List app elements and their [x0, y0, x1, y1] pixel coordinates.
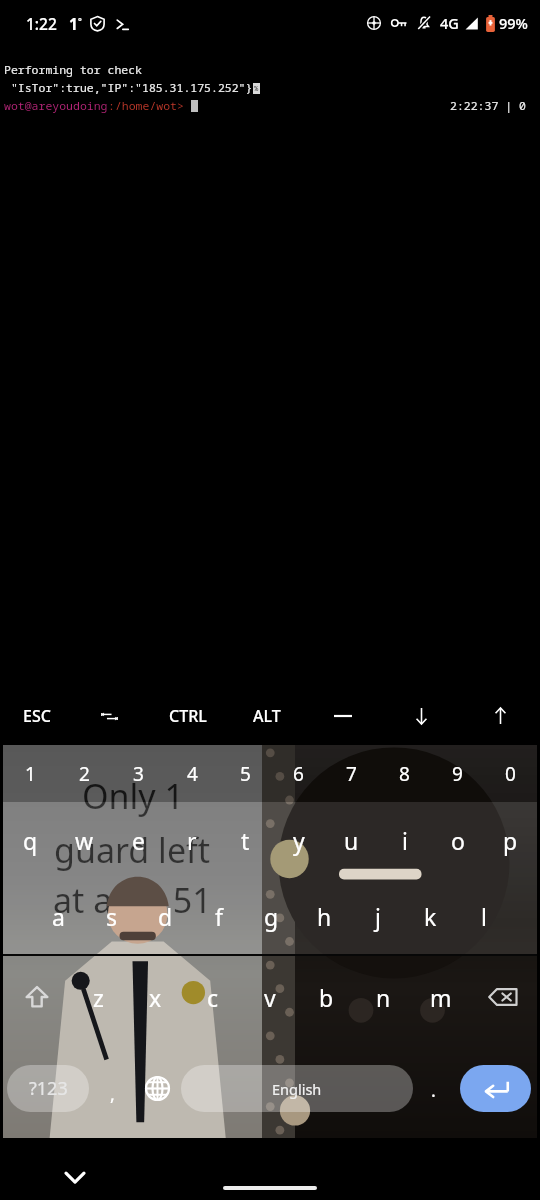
staticText: x — [149, 982, 162, 1013]
staticText: y — [293, 825, 305, 856]
staticText: wot@areyoudoing — [4, 98, 108, 114]
button[interactable]: ESC — [0, 687, 74, 745]
staticText: u — [344, 825, 359, 856]
button[interactable]: ALT — [231, 687, 303, 745]
staticText: a — [52, 901, 65, 932]
staticText: s — [106, 901, 118, 932]
staticText: 0 — [505, 761, 516, 787]
button[interactable]: Minus — [303, 687, 382, 745]
staticText: "IsTor":true,"IP":"185.31.175.252"} — [4, 80, 253, 96]
button[interactable]: Tab — [74, 687, 145, 745]
button[interactable]: 1 — [3, 745, 57, 802]
button[interactable]: w — [57, 802, 111, 878]
staticText: 99% — [499, 13, 528, 33]
button[interactable]: m — [412, 956, 469, 1038]
button[interactable]: q — [3, 802, 57, 878]
button[interactable]: Backspace — [469, 956, 537, 1038]
button[interactable]: ?123 — [3, 1038, 92, 1138]
button[interactable]: e — [111, 802, 165, 878]
staticText: i — [402, 825, 408, 856]
button[interactable]: k — [404, 878, 457, 954]
staticText: 5 — [240, 761, 251, 787]
button[interactable]: 7 — [325, 745, 378, 802]
button[interactable]: English — [181, 1038, 413, 1138]
staticText: 7 — [346, 761, 357, 787]
staticText: 3 — [133, 761, 144, 787]
button[interactable]: Change language — [133, 1038, 181, 1138]
button[interactable]: , — [92, 1038, 133, 1138]
button[interactable]: b — [298, 956, 355, 1038]
staticText: 4G — [440, 13, 459, 33]
staticText: n — [376, 982, 391, 1013]
button[interactable]: 6 — [272, 745, 325, 802]
button[interactable]: u — [325, 802, 378, 878]
button[interactable]: 8 — [378, 745, 431, 802]
button[interactable]: Shift — [3, 956, 70, 1038]
button[interactable]: a — [31, 878, 85, 954]
staticText: r — [187, 825, 197, 856]
button[interactable]: c — [184, 956, 241, 1038]
button[interactable]: 5 — [219, 745, 272, 802]
staticText: , — [110, 1082, 115, 1107]
staticText: 2:22:37 | 0 — [450, 98, 526, 114]
button[interactable]: 9 — [431, 745, 484, 802]
staticText: 8 — [399, 761, 410, 787]
staticText: 1:22 — [26, 13, 57, 34]
staticText: ESC — [23, 705, 51, 727]
button[interactable]: o — [431, 802, 484, 878]
button[interactable]: 3 — [111, 745, 165, 802]
staticText: ° — [78, 14, 82, 26]
button[interactable]: f — [192, 878, 245, 954]
staticText: % — [254, 84, 259, 94]
staticText: :/home/wot> — [108, 98, 184, 114]
button[interactable]: l — [457, 878, 510, 954]
staticText: Performing tor check — [4, 62, 142, 78]
button[interactable]: g — [245, 878, 298, 954]
staticText: d — [158, 901, 173, 932]
button[interactable]: Enter — [454, 1038, 537, 1138]
button[interactable]: n — [355, 956, 412, 1038]
staticText: h — [317, 901, 332, 932]
button[interactable]: x — [127, 956, 184, 1038]
staticText: f — [215, 901, 223, 932]
button[interactable]: d — [139, 878, 192, 954]
staticText: CTRL — [169, 705, 207, 727]
staticText: ALT — [253, 705, 281, 727]
staticText: k — [424, 901, 437, 932]
staticText: ?123 — [29, 1076, 68, 1101]
button[interactable]: p — [484, 802, 537, 878]
button[interactable]: h — [298, 878, 351, 954]
staticText: c — [207, 982, 219, 1013]
staticText: w — [75, 825, 94, 856]
button[interactable]: j — [351, 878, 404, 954]
button[interactable]: . — [413, 1038, 454, 1138]
staticText: Only 1 — [82, 773, 184, 819]
staticText: 9 — [452, 761, 463, 787]
staticText: 1 — [25, 761, 36, 787]
button[interactable]: v — [241, 956, 298, 1038]
staticText: 1 — [69, 13, 78, 34]
button[interactable]: z — [70, 956, 127, 1038]
button[interactable]: CTRL — [145, 687, 231, 745]
button[interactable]: i — [378, 802, 431, 878]
button[interactable]: t — [219, 802, 272, 878]
staticText: m — [430, 982, 452, 1013]
button[interactable]: y — [272, 802, 325, 878]
staticText: z — [93, 982, 104, 1013]
button[interactable]: 0 — [484, 745, 537, 802]
button[interactable]: Arrow up — [461, 687, 540, 745]
staticText: v — [264, 982, 276, 1013]
staticText: 2 — [79, 761, 90, 787]
button[interactable]: Arrow down — [382, 687, 461, 745]
staticText: t — [241, 825, 250, 856]
staticText: j — [375, 901, 381, 932]
button[interactable]: r — [165, 802, 219, 878]
button[interactable]: 4 — [165, 745, 219, 802]
staticText: b — [319, 982, 334, 1013]
staticText: 4 — [187, 761, 198, 787]
button[interactable]: Hide keyboard — [60, 1162, 90, 1192]
staticText: at area 51 — [53, 877, 212, 923]
staticText: English — [272, 1079, 322, 1099]
button[interactable]: 2 — [57, 745, 111, 802]
button[interactable]: s — [85, 878, 139, 954]
